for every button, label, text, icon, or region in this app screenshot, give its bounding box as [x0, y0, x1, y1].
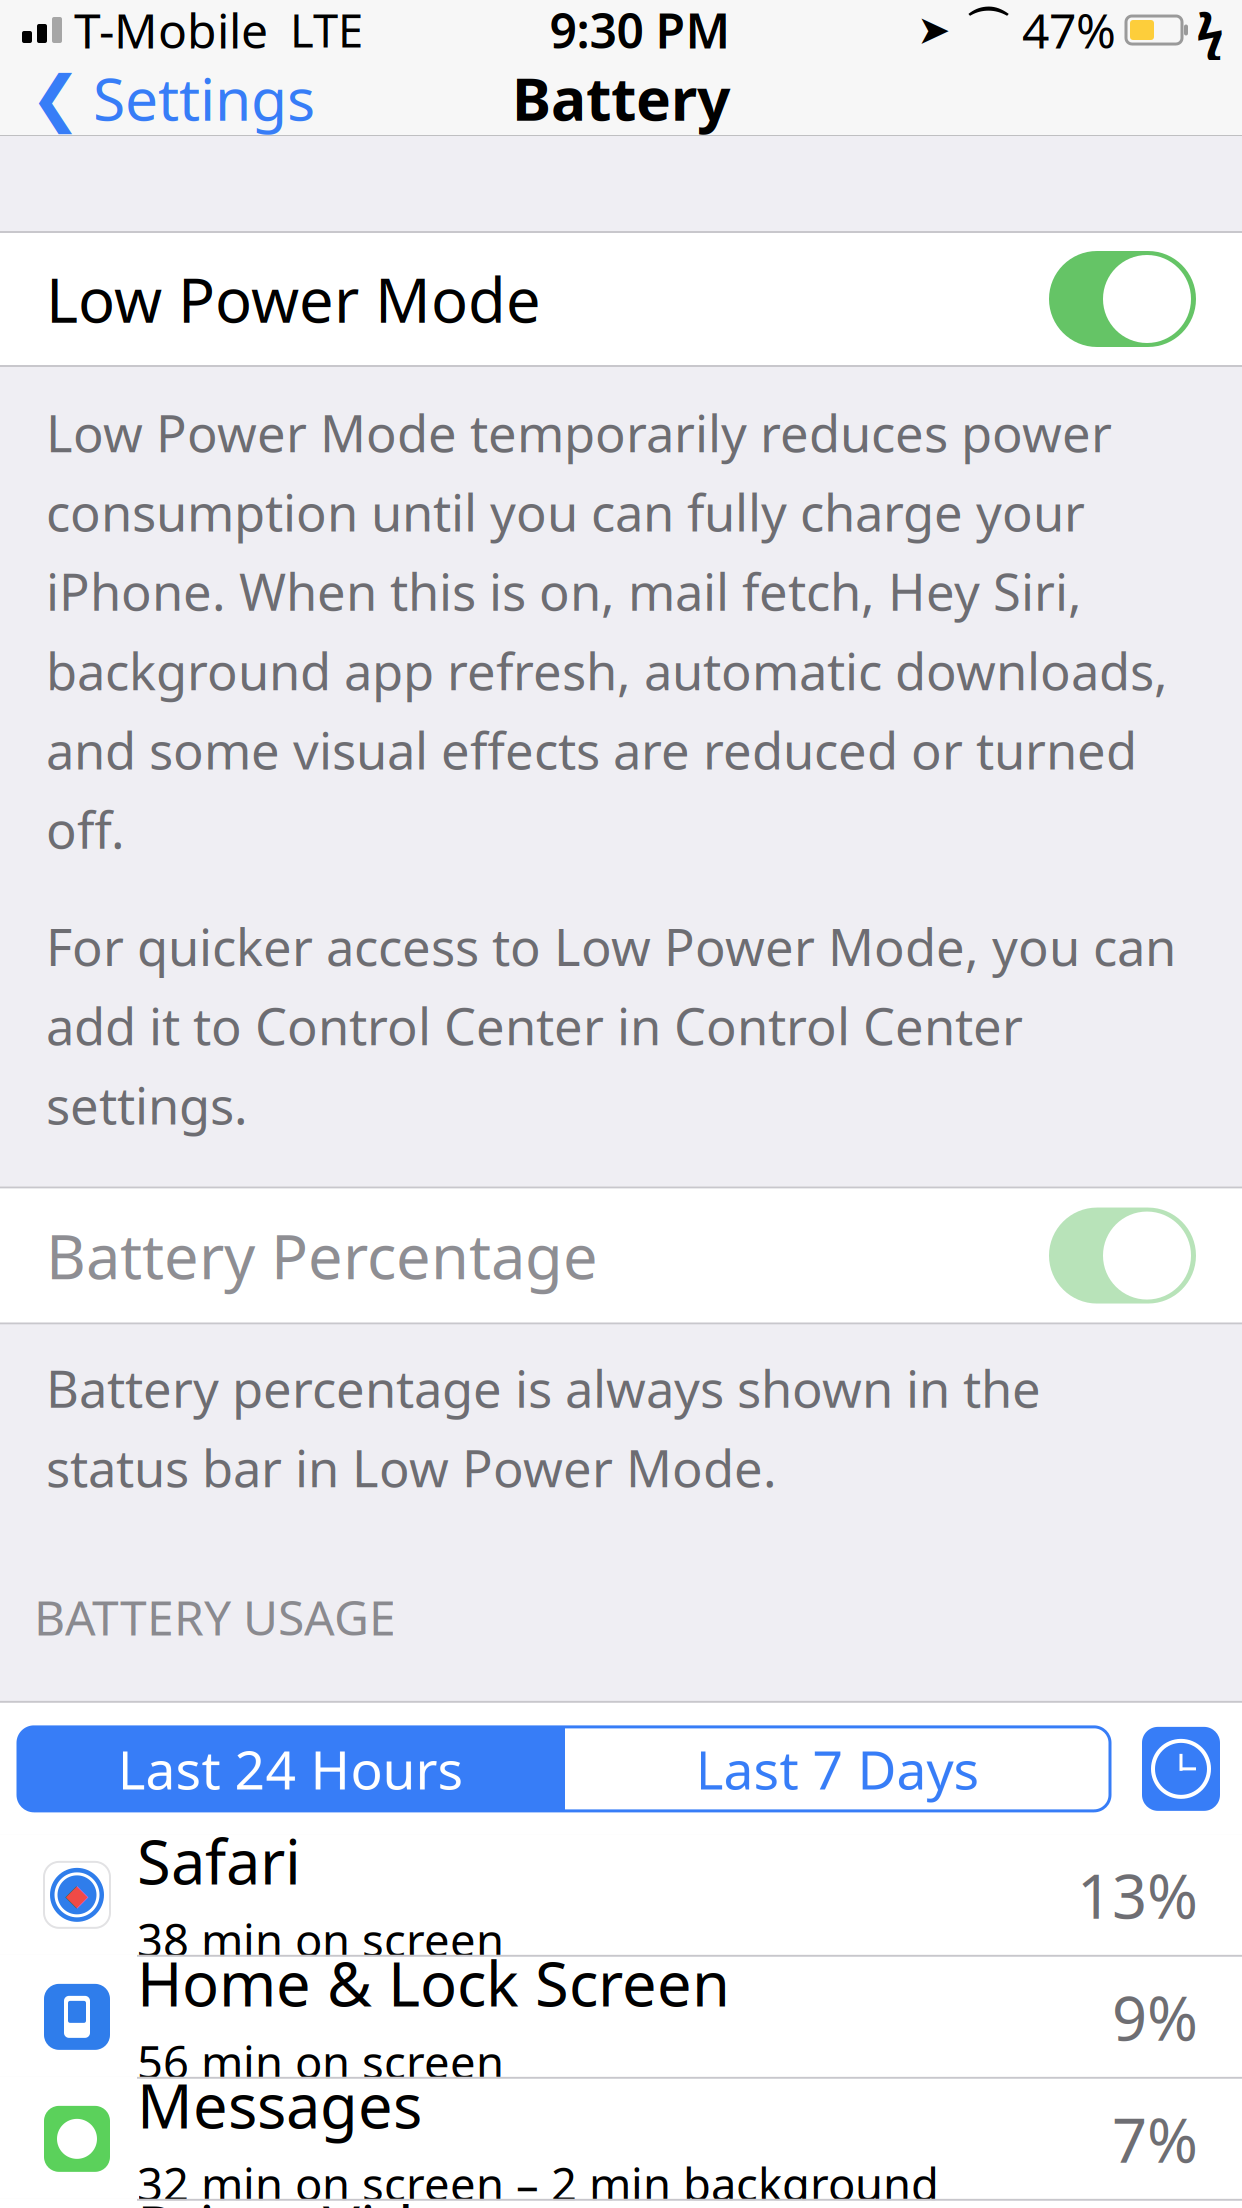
staticText: ◆	[65, 1878, 88, 1911]
staticText: 13%	[1077, 1854, 1198, 1935]
staticText: 38 min on screen	[137, 1909, 504, 1970]
staticText: ❮	[30, 63, 81, 133]
staticText: Prime Video	[137, 2186, 486, 2208]
staticText: Last 24 Hours	[117, 1733, 463, 1804]
staticText: Low Power Mode	[46, 258, 541, 340]
staticText: ➤	[917, 7, 951, 53]
button[interactable]: ❮	[0, 45, 315, 151]
staticText: BATTERY USAGE	[34, 1585, 396, 1649]
staticText: 9%	[1112, 1976, 1198, 2057]
button[interactable]: Show battery usage chart	[1142, 1727, 1220, 1811]
staticText: Settings	[93, 59, 315, 137]
staticText: 7%	[1112, 2098, 1198, 2179]
staticText: T-Mobile	[74, 0, 268, 62]
button[interactable]: Low Power Mode	[0, 233, 1242, 365]
staticText: 9:30 PM	[549, 0, 730, 62]
button[interactable]: Messages	[0, 2079, 1242, 2199]
staticText: 32 min on screen – 2 min background	[137, 2153, 939, 2208]
staticText: LTE	[290, 0, 363, 60]
button[interactable]: amazon	[0, 2201, 1242, 2208]
staticText: 56 min on screen	[137, 2031, 504, 2092]
staticText: Home & Lock Screen	[137, 1942, 730, 2023]
staticText: Messages	[137, 2064, 422, 2145]
staticText: For quicker access to Low Power Mode, yo…	[46, 913, 1176, 1139]
staticText: Safari	[137, 1820, 301, 1901]
button[interactable]: Last 24 Hours	[18, 1727, 563, 1811]
staticText: Battery	[512, 59, 730, 137]
staticText: ϟ	[1196, 0, 1224, 64]
staticText: Low Power Mode temporarily reduces power…	[46, 399, 1168, 863]
button[interactable]: Last 7 Days	[565, 1727, 1110, 1811]
staticText: Battery Percentage	[46, 1215, 598, 1296]
staticText: 47%	[1022, 0, 1116, 62]
button[interactable]: ◆	[0, 1835, 1242, 1955]
staticText: ⌒	[965, 2, 1010, 58]
staticText: Last 7 Days	[695, 1733, 979, 1804]
button[interactable]: Home & Lock Screen	[0, 1957, 1242, 2077]
staticText: Battery percentage is always shown in th…	[46, 1355, 1041, 1501]
button[interactable]: Battery Percentage	[0, 1189, 1242, 1323]
